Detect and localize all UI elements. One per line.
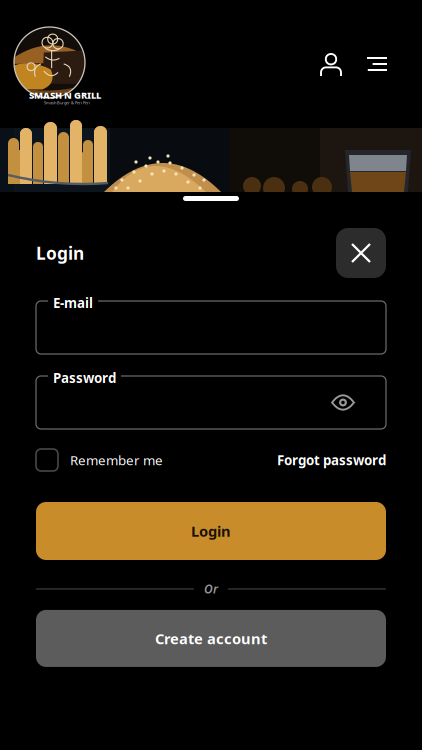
staticText: Login [36, 241, 84, 264]
button[interactable]: Login [36, 502, 386, 560]
staticText: SMASH N GRILL [29, 89, 101, 101]
staticText: Smash Burger & Peri Peri [44, 100, 90, 105]
staticText: Remember me [70, 451, 163, 469]
staticText: Forgot password [277, 451, 386, 469]
button[interactable]: Forgot password [277, 451, 386, 469]
button[interactable]: Menu [359, 46, 395, 82]
button[interactable]: Remember me [36, 449, 163, 471]
staticText: Password [53, 369, 116, 387]
staticText: Create account [155, 629, 267, 648]
button[interactable]: Create account [36, 610, 386, 667]
button[interactable]: Close [336, 228, 386, 278]
staticText: Login [191, 521, 231, 541]
staticText: Or [204, 581, 218, 597]
button[interactable]: Account [313, 47, 349, 83]
staticText: E-mail [53, 294, 93, 312]
